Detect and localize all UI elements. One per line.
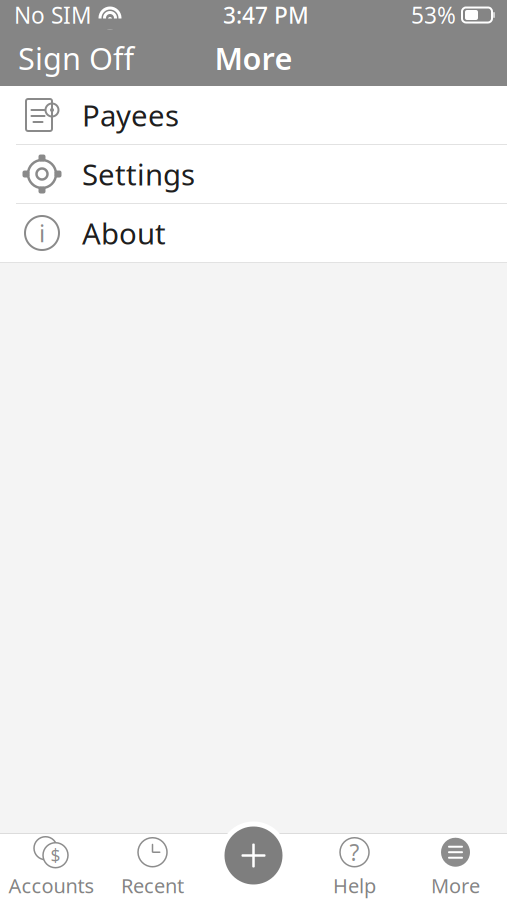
staticText: Recent <box>121 872 184 899</box>
button[interactable]: Sign Off <box>0 30 152 86</box>
staticText: 53% <box>411 0 456 30</box>
staticText: More <box>214 38 292 78</box>
button[interactable]: Recent <box>102 834 203 900</box>
staticText: 3:47 PM <box>223 0 309 30</box>
staticText: i <box>39 217 45 249</box>
button[interactable]: $ <box>1 834 102 900</box>
button[interactable]: i <box>0 204 507 262</box>
staticText: Payees <box>82 95 179 134</box>
staticText: Settings <box>82 154 195 193</box>
staticText: More <box>431 872 480 899</box>
button[interactable]: More <box>405 834 506 900</box>
staticText: No SIM <box>14 0 92 30</box>
button[interactable]: Add <box>203 834 304 900</box>
staticText: ? <box>349 837 359 867</box>
staticText: Accounts <box>8 872 94 899</box>
staticText: Help <box>333 872 376 899</box>
button[interactable]: Settings <box>0 145 507 203</box>
staticText: About <box>82 213 166 252</box>
button[interactable]: Payees <box>0 86 507 144</box>
button[interactable]: Add <box>218 820 288 890</box>
staticText: Sign Off <box>18 38 134 78</box>
staticText: $ <box>50 844 60 867</box>
button[interactable]: ? <box>304 834 405 900</box>
